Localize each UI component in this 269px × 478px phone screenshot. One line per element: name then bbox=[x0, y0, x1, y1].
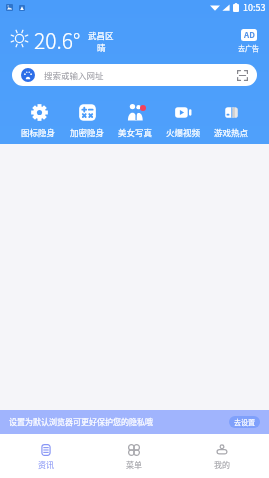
staticText: 10:53 bbox=[243, 1, 266, 14]
staticText: 去广告 bbox=[238, 43, 259, 53]
staticText: 图标隐身 bbox=[21, 126, 56, 138]
button[interactable]: 搜索或输入网址 bbox=[12, 64, 257, 86]
button[interactable]: 去设置 bbox=[229, 416, 260, 428]
staticText: 设置为默认浏览器可更好保护您的隐私哦 bbox=[9, 416, 153, 428]
staticText: 我的 bbox=[214, 459, 230, 471]
staticText: 游戏热点 bbox=[214, 126, 249, 138]
button[interactable]: 加密隐身 bbox=[63, 102, 111, 139]
staticText: 搜索或输入网址 bbox=[44, 69, 104, 81]
button[interactable]: 菜单 bbox=[90, 434, 178, 478]
staticText: 资讯 bbox=[38, 459, 54, 471]
button[interactable]: 火爆视频 bbox=[159, 102, 207, 139]
button[interactable]: Scan QR code bbox=[236, 69, 249, 82]
staticText: 美女写真 bbox=[118, 126, 153, 138]
staticText: 火爆视频 bbox=[166, 126, 201, 138]
staticText: 20.6° bbox=[34, 25, 81, 51]
staticText: AD bbox=[244, 29, 255, 41]
button[interactable]: 图标隐身 bbox=[14, 102, 63, 139]
button[interactable]: 游戏热点 bbox=[207, 102, 255, 139]
button[interactable]: 资讯 bbox=[2, 434, 90, 478]
button[interactable]: 我的 bbox=[178, 434, 266, 478]
staticText: 晴 bbox=[97, 41, 106, 53]
staticText: 去设置 bbox=[234, 417, 255, 427]
button[interactable]: 美女写真 bbox=[111, 102, 159, 139]
staticText: 武昌区 bbox=[88, 29, 114, 41]
staticText: 加密隐身 bbox=[70, 126, 105, 138]
staticText: 菜单 bbox=[126, 459, 142, 471]
button[interactable]: AD bbox=[237, 29, 260, 53]
